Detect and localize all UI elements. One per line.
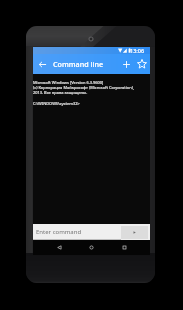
button[interactable]: Back	[33, 54, 51, 74]
button[interactable]: Send command	[121, 224, 150, 240]
staticText: 2013. Все права защищены.	[33, 90, 88, 95]
button[interactable]: Favorite	[134, 54, 150, 74]
button[interactable]: Add	[119, 54, 134, 74]
staticText: Command line	[53, 59, 119, 69]
button[interactable]: Recents	[116, 240, 132, 255]
staticText: Microsoft Windows [Version 6.3.9600]	[33, 80, 104, 85]
staticText: C:\WINDOWS\system32>	[33, 101, 80, 106]
button[interactable]: Home	[83, 240, 99, 255]
button[interactable]: Back	[51, 240, 67, 255]
staticText: (c) Корпорация Майкрософт (Microsoft Cor…	[33, 85, 135, 90]
staticText: Enter command	[36, 228, 82, 236]
staticText: 13:06	[130, 47, 145, 54]
button[interactable]: Enter command	[33, 224, 121, 240]
